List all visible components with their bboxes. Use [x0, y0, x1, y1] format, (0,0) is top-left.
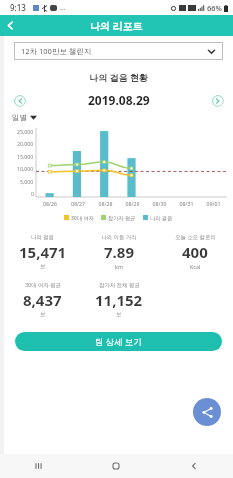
staticText: 400	[182, 242, 208, 262]
button[interactable]: 12차 100만보 챌린지	[14, 42, 223, 60]
staticText: 2019.08.29	[88, 92, 150, 108]
staticText: 나의 걸음	[150, 214, 173, 221]
staticText: 8,437	[23, 290, 62, 310]
staticText: 보	[116, 311, 122, 318]
staticText: 나의 이동 거리	[101, 233, 137, 240]
button[interactable]: Previous day	[13, 94, 26, 107]
staticText: 9:13	[10, 2, 26, 13]
staticText: 팀 상세 보기	[95, 336, 142, 348]
button[interactable]: 팀 상세 보기	[15, 332, 222, 351]
staticText: 참가자 평균	[108, 214, 136, 221]
staticText: …	[60, 3, 66, 13]
button[interactable]: Share	[193, 398, 221, 426]
staticText: 08/31	[173, 200, 200, 207]
staticText: 08/29	[119, 200, 146, 207]
staticText: 30대 여자 평균	[25, 281, 61, 288]
staticText: 11,152	[95, 290, 143, 310]
staticText: 08/28	[92, 200, 119, 207]
button[interactable]: 일별	[12, 113, 37, 122]
staticText: 25,000	[17, 128, 34, 135]
staticText: 보	[40, 311, 46, 318]
staticText: 일별	[12, 113, 27, 122]
button[interactable]: Recents	[0, 454, 77, 478]
staticText: 08/26	[36, 200, 64, 207]
staticText: 오늘 소모 칼로리	[175, 233, 216, 240]
staticText: km	[115, 263, 123, 270]
staticText: 나의 리포트	[90, 19, 143, 33]
staticText: 15,000	[17, 153, 34, 160]
staticText: 나의 걸음	[31, 233, 54, 240]
staticText: 참가자 전체 평균	[99, 281, 140, 288]
staticText: Kcal	[190, 263, 201, 270]
button[interactable]: Back	[0, 15, 21, 36]
button[interactable]: Back	[155, 454, 233, 478]
staticText: 12차 100만보 챌린지	[21, 46, 207, 56]
staticText: 20,000	[17, 140, 34, 147]
button[interactable]: Next day	[211, 94, 224, 107]
staticText: 0	[31, 190, 34, 197]
staticText: 08/30	[146, 200, 173, 207]
button[interactable]: Home	[77, 454, 155, 478]
staticText: 보	[40, 263, 46, 270]
staticText: 15,471	[19, 242, 67, 262]
staticText: 66%	[207, 3, 222, 13]
staticText: 30대 여자	[71, 214, 94, 221]
staticText: 09/01	[200, 200, 227, 207]
staticText: 나의 걸음 현황	[4, 71, 233, 83]
staticText: 5,000	[20, 178, 34, 185]
staticText: 7.89	[104, 242, 134, 262]
staticText: 08/27	[64, 200, 92, 207]
staticText: 10,000	[17, 165, 34, 172]
